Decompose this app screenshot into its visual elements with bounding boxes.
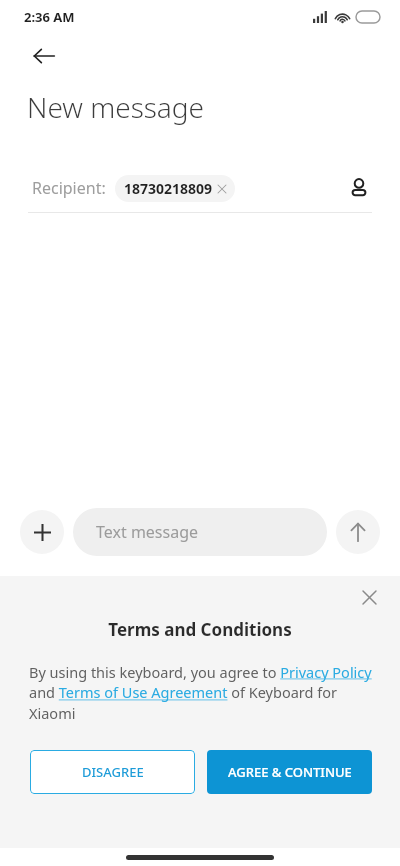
button[interactable]: Back	[22, 34, 66, 78]
staticText: By using this keyboard, you agree to Pri…	[29, 662, 376, 724]
button[interactable]: Add attachment	[20, 510, 64, 554]
button[interactable]: Text message	[73, 508, 327, 556]
button[interactable]: AGREE & CONTINUE	[207, 750, 372, 794]
staticText: 18730218809	[124, 179, 213, 198]
button[interactable]: Close	[352, 580, 386, 614]
staticText: Terms and Conditions	[0, 618, 400, 641]
button[interactable]: DISAGREE	[30, 750, 195, 794]
staticText: AGREE & CONTINUE	[228, 763, 352, 781]
button[interactable]: Choose contact	[340, 169, 378, 207]
staticText: New message	[27, 88, 205, 126]
staticText: DISAGREE	[82, 763, 144, 781]
staticText: Text message	[96, 521, 199, 543]
staticText: Recipient:	[32, 177, 106, 199]
staticText: 2:36 AM	[24, 8, 75, 26]
button[interactable]: 18730218809	[115, 175, 235, 202]
button[interactable]: Send	[336, 510, 380, 554]
